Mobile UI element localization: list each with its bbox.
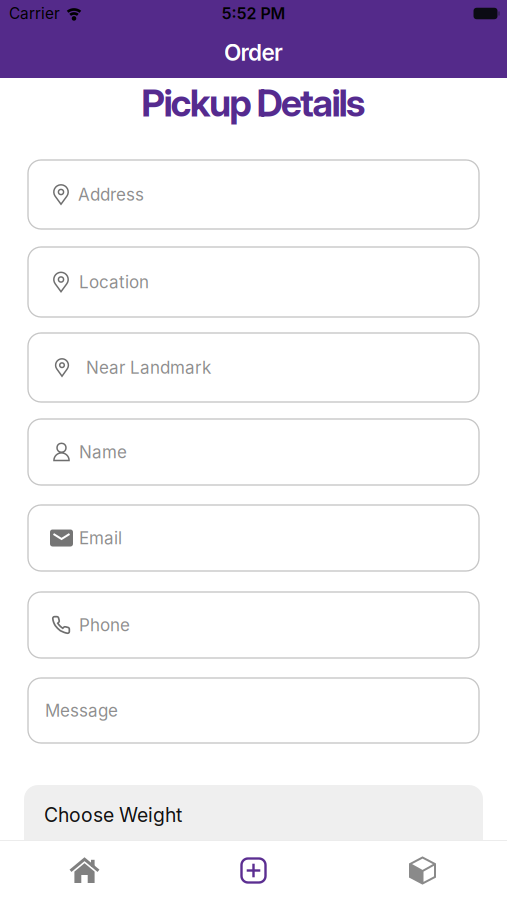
- button[interactable]: Email: [28, 505, 479, 571]
- button[interactable]: Message: [28, 678, 479, 743]
- staticText: Location: [79, 272, 149, 292]
- staticText: Phone: [79, 615, 130, 635]
- staticText: Pickup Details: [141, 80, 366, 126]
- staticText: Message: [45, 700, 118, 721]
- staticText: Carrier: [9, 4, 60, 23]
- staticText: Name: [79, 442, 127, 462]
- button[interactable]: [338, 841, 507, 900]
- button[interactable]: Location: [28, 247, 479, 317]
- staticText: 5:52 PM: [221, 4, 285, 23]
- staticText: Near Landmark: [86, 357, 211, 378]
- staticText: Address: [78, 184, 144, 205]
- button[interactable]: Near Landmark: [28, 333, 479, 402]
- staticText: Email: [79, 528, 122, 548]
- button[interactable]: Address: [28, 160, 479, 229]
- staticText: Choose Weight: [44, 803, 182, 827]
- button[interactable]: Name: [28, 419, 479, 485]
- button[interactable]: [169, 841, 338, 900]
- staticText: Order: [224, 39, 283, 66]
- button[interactable]: Phone: [28, 592, 479, 658]
- button[interactable]: [0, 841, 169, 900]
